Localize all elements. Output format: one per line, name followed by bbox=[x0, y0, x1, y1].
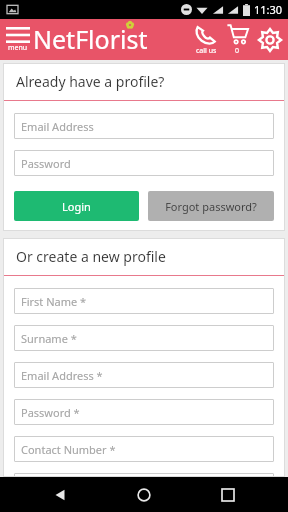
staticText: Login bbox=[62, 199, 91, 214]
staticText: Email Address * bbox=[21, 368, 103, 383]
button[interactable]: Password * bbox=[14, 399, 274, 425]
staticText: Password bbox=[21, 156, 71, 171]
button[interactable]: Email Address * bbox=[14, 362, 274, 388]
button[interactable]: call us bbox=[193, 24, 219, 56]
staticText: Already have a profile? bbox=[16, 72, 165, 91]
staticText: call us bbox=[196, 46, 217, 56]
button[interactable]: Email Address bbox=[14, 113, 274, 139]
staticText: Forgot password? bbox=[165, 199, 257, 214]
button[interactable]: Back bbox=[36, 477, 84, 512]
staticText: Email Address bbox=[21, 119, 94, 134]
button[interactable]: menu bbox=[4, 25, 32, 55]
button[interactable]: Password bbox=[14, 150, 274, 176]
button[interactable]: Surname * bbox=[14, 325, 274, 351]
button[interactable]: Confirm Password * bbox=[14, 473, 274, 477]
staticText: Confirm Password * bbox=[21, 473, 125, 477]
staticText: First Name * bbox=[21, 294, 87, 309]
staticText: Password * bbox=[21, 405, 80, 420]
button[interactable]: Home bbox=[120, 477, 168, 512]
staticText: menu bbox=[8, 43, 28, 53]
button[interactable]: First Name * bbox=[14, 288, 274, 314]
staticText: Surname * bbox=[21, 331, 77, 346]
button[interactable]: Forgot password? bbox=[148, 191, 274, 221]
staticText: Contact Number * bbox=[21, 442, 116, 457]
button[interactable]: Login bbox=[14, 191, 139, 221]
staticText: NetFlorist bbox=[33, 22, 148, 56]
button[interactable]: Settings bbox=[256, 26, 284, 54]
button[interactable]: Recent apps bbox=[204, 477, 252, 512]
button[interactable]: NetFlorist bbox=[33, 22, 148, 56]
staticText: 11:30 bbox=[254, 2, 283, 17]
button[interactable]: Cart, 0 items bbox=[224, 23, 251, 56]
staticText: 0 bbox=[235, 46, 240, 56]
staticText: Or create a new profile bbox=[16, 247, 166, 266]
button[interactable]: Contact Number * bbox=[14, 436, 274, 462]
